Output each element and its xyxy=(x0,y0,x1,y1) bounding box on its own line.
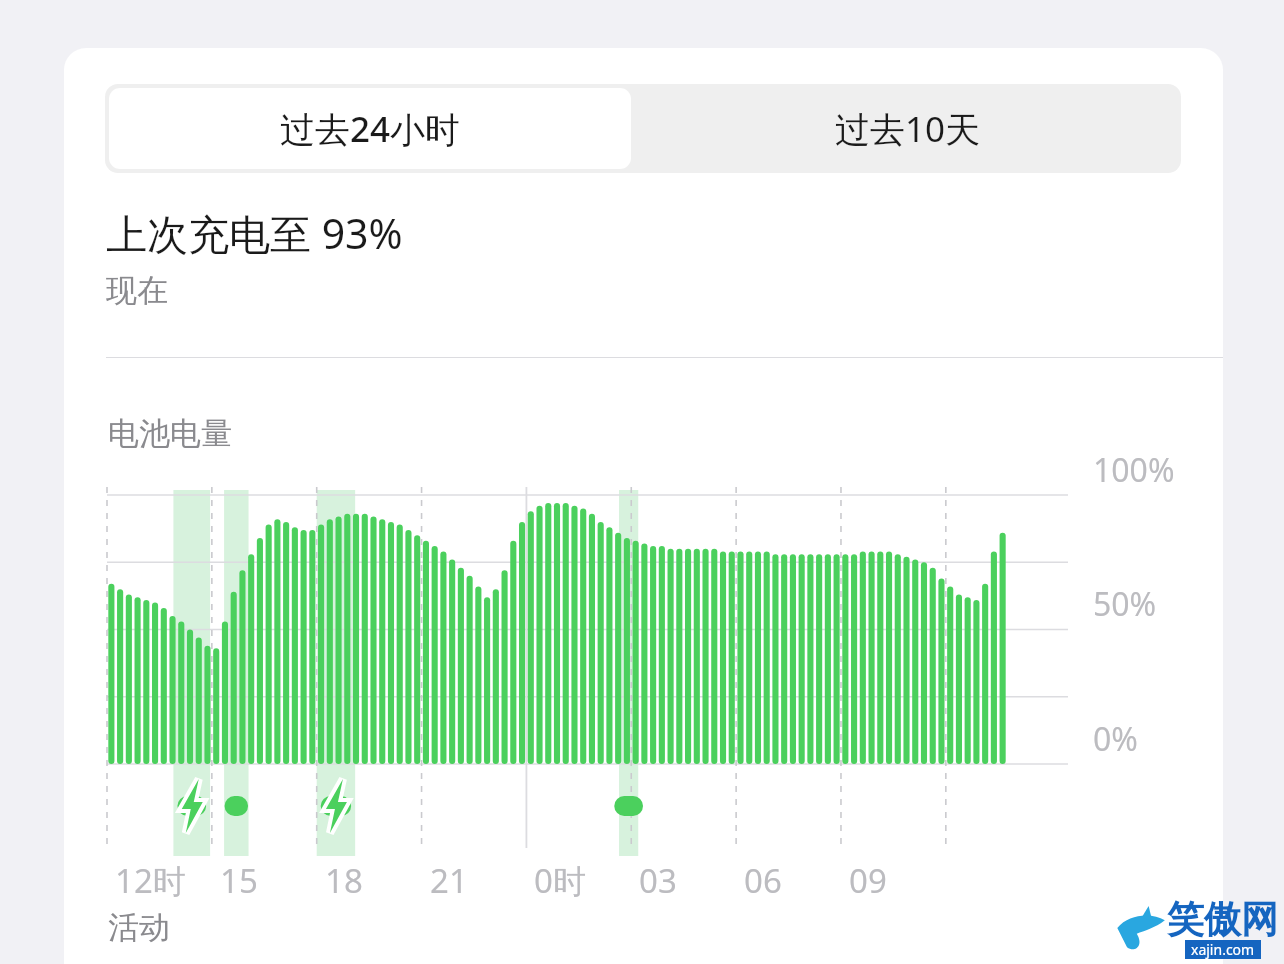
staticText: 15 xyxy=(220,858,258,903)
staticText: 18 xyxy=(325,858,363,903)
staticText: 笑傲网 xyxy=(1167,896,1278,943)
staticText: 现在 xyxy=(106,271,168,310)
staticText: 活动 xyxy=(108,908,170,947)
staticText: 50% xyxy=(1093,582,1157,626)
staticText: 0时 xyxy=(534,858,586,903)
button[interactable]: 过去10天 xyxy=(635,84,1181,173)
staticText: 03 xyxy=(639,858,677,903)
staticText: 09 xyxy=(849,858,887,903)
staticText: 06 xyxy=(744,858,782,903)
button[interactable]: 过去24小时 xyxy=(109,88,631,169)
staticText: 过去24小时 xyxy=(280,105,461,153)
staticText: 100% xyxy=(1093,448,1175,492)
staticText: 21 xyxy=(430,858,468,903)
staticText: xajin.com xyxy=(1191,940,1255,959)
staticText: 上次充电至 93% xyxy=(106,205,403,261)
staticText: 电池电量 xyxy=(108,414,232,453)
staticText: 0% xyxy=(1093,717,1138,761)
other: Site watermark xyxy=(1113,905,1167,953)
staticText: 12时 xyxy=(115,858,186,903)
staticText: 过去10天 xyxy=(835,105,981,153)
